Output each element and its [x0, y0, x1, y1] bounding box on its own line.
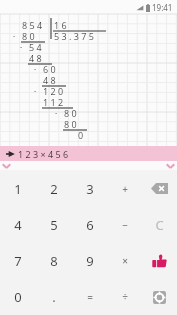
button[interactable]: 3: [72, 170, 107, 207]
button[interactable]: Settings: [142, 279, 177, 315]
button[interactable]: 2: [36, 170, 72, 207]
staticText: C: [155, 216, 164, 234]
staticText: ×: [122, 254, 128, 268]
button[interactable]: 4: [0, 207, 36, 243]
staticText: ÷: [122, 290, 128, 304]
staticText: 0: [14, 288, 22, 306]
staticText: 1: [14, 180, 22, 198]
button[interactable]: 1: [0, 170, 36, 207]
button[interactable]: .: [36, 279, 72, 315]
button[interactable]: C: [142, 207, 177, 243]
button[interactable]: 0: [0, 279, 36, 315]
staticText: 4: [14, 216, 22, 234]
button[interactable]: Backspace: [142, 170, 177, 207]
button[interactable]: ÷: [107, 279, 142, 315]
staticText: 19:41: [152, 2, 173, 13]
button[interactable]: Confirm: [142, 243, 177, 279]
staticText: +: [122, 182, 128, 196]
staticText: 3: [86, 180, 94, 198]
staticText: 9: [86, 252, 94, 270]
button[interactable]: ×: [107, 243, 142, 279]
staticText: 7: [14, 252, 22, 270]
staticText: 6: [86, 216, 94, 234]
staticText: 1 2 3 × 4 5 6: [18, 148, 69, 160]
staticText: =: [87, 290, 93, 304]
button[interactable]: 5: [36, 207, 72, 243]
button[interactable]: 9: [72, 243, 107, 279]
staticText: .: [52, 288, 56, 306]
button[interactable]: 8: [36, 243, 72, 279]
button[interactable]: +: [107, 170, 142, 207]
button[interactable]: −: [107, 207, 142, 243]
staticText: −: [122, 218, 128, 232]
staticText: 2: [50, 180, 58, 198]
staticText: 8: [50, 252, 58, 270]
staticText: 5: [50, 216, 58, 234]
button[interactable]: =: [72, 279, 107, 315]
button[interactable]: 1 2 3 × 4 5 6: [0, 146, 177, 161]
button[interactable]: 7: [0, 243, 36, 279]
button[interactable]: 6: [72, 207, 107, 243]
